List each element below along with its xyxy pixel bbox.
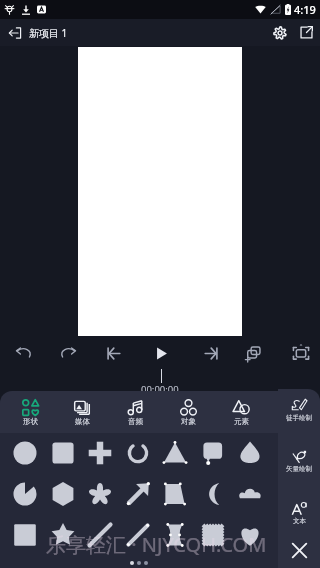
button[interactable]: 元素: [215, 391, 268, 433]
staticText: 对象: [181, 417, 196, 426]
button[interactable]: Settings: [266, 19, 293, 46]
staticText: 元素: [234, 417, 249, 426]
staticText: 矢量绘制: [286, 465, 312, 473]
button[interactable]: Add layer: [239, 339, 267, 367]
button[interactable]: Shape: [6, 514, 44, 555]
button[interactable]: Shape: [119, 432, 157, 473]
button[interactable]: Shape: [81, 473, 119, 514]
staticText: 徒手绘制: [286, 414, 312, 422]
button[interactable]: Shape: [119, 514, 157, 555]
staticText: 00:00:00: [141, 383, 179, 396]
staticText: 4:19: [294, 2, 316, 17]
button[interactable]: Back: [0, 19, 29, 46]
staticText: 媒体: [75, 417, 90, 426]
button[interactable]: Shape: [81, 514, 119, 555]
button[interactable]: Shape: [44, 514, 82, 555]
button[interactable]: Shape: [156, 432, 194, 473]
button[interactable]: 形状: [4, 391, 56, 433]
button[interactable]: Shape: [156, 473, 194, 514]
button[interactable]: Shape: [231, 473, 269, 514]
button[interactable]: Undo: [10, 339, 38, 367]
button[interactable]: Shape: [156, 514, 194, 555]
button[interactable]: Shape: [6, 432, 44, 473]
button[interactable]: Export: [293, 19, 320, 46]
button[interactable]: Skip to start: [99, 339, 127, 367]
button[interactable]: 徒手绘制: [278, 398, 320, 422]
staticText: 形状: [23, 417, 38, 426]
button[interactable]: 文本: [278, 501, 320, 525]
button[interactable]: Fit to screen: [287, 339, 315, 367]
button[interactable]: Shape: [194, 473, 232, 514]
button[interactable]: Close: [278, 535, 320, 565]
button[interactable]: 对象: [162, 391, 215, 433]
button[interactable]: Shape: [194, 514, 232, 555]
button[interactable]: Shape: [44, 432, 82, 473]
button[interactable]: Play: [147, 339, 175, 367]
button[interactable]: Shape: [194, 432, 232, 473]
button[interactable]: Shape: [231, 514, 269, 555]
button[interactable]: 媒体: [56, 391, 109, 433]
button[interactable]: Shape: [231, 432, 269, 473]
staticText: 乐享轻汇 · NJYCQH.COM: [46, 531, 267, 558]
button[interactable]: Shape: [81, 432, 119, 473]
button[interactable]: Shape: [44, 473, 82, 514]
button[interactable]: Shape: [119, 473, 157, 514]
button[interactable]: 音频: [109, 391, 162, 433]
staticText: 新项目 1: [29, 26, 68, 40]
button[interactable]: Redo: [54, 339, 82, 367]
button[interactable]: Skip to end: [197, 339, 225, 367]
button[interactable]: 矢量绘制: [278, 449, 320, 473]
staticText: 音频: [128, 417, 143, 426]
button[interactable]: Shape: [6, 473, 44, 514]
staticText: 文本: [293, 517, 306, 525]
